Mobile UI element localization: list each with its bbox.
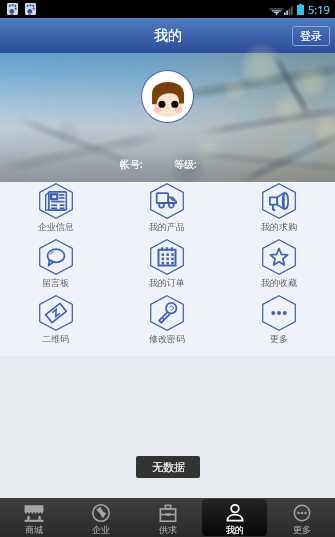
button[interactable]: 更多 <box>223 294 335 350</box>
button[interactable]: 更多 <box>269 499 334 536</box>
staticText: 我的产品 <box>149 221 185 232</box>
staticText: 供求 <box>159 524 177 535</box>
staticText: 5:19 <box>308 2 330 17</box>
button[interactable]: Avatar <box>142 71 193 122</box>
staticText: 等级: <box>174 157 197 171</box>
staticText: 更多 <box>293 524 311 535</box>
button[interactable]: 我的收藏 <box>223 238 335 294</box>
staticText: 帐号: <box>120 157 143 171</box>
staticText: 登录 <box>300 29 322 43</box>
staticText: 留言板 <box>42 277 69 288</box>
button[interactable]: 我的求购 <box>223 182 335 238</box>
staticText: 商城 <box>25 524 43 535</box>
button[interactable]: 二维码 <box>0 294 111 350</box>
staticText: 企业 <box>92 524 110 535</box>
staticText: 我的求购 <box>261 221 297 232</box>
button[interactable]: 修改密码 <box>111 294 223 350</box>
button[interactable]: 商城 <box>1 499 66 536</box>
button[interactable]: 我的订单 <box>111 238 223 294</box>
staticText: 我的 <box>226 524 244 535</box>
staticText: 无数据 <box>152 460 185 474</box>
button[interactable]: 留言板 <box>0 238 111 294</box>
button[interactable]: 登录 <box>292 26 330 46</box>
staticText: 我的订单 <box>149 277 185 288</box>
staticText: 企业信息 <box>38 221 74 232</box>
button[interactable]: 企业 <box>68 499 133 536</box>
button[interactable]: 企业信息 <box>0 182 111 238</box>
staticText: 我的收藏 <box>261 277 297 288</box>
staticText: 更多 <box>270 333 288 344</box>
button[interactable]: 我的产品 <box>111 182 223 238</box>
button[interactable]: 供求 <box>135 499 200 536</box>
staticText: 修改密码 <box>149 333 185 344</box>
staticText: 二维码 <box>42 333 69 344</box>
button[interactable]: 我的 <box>202 499 267 536</box>
staticText: 我的 <box>154 27 182 45</box>
